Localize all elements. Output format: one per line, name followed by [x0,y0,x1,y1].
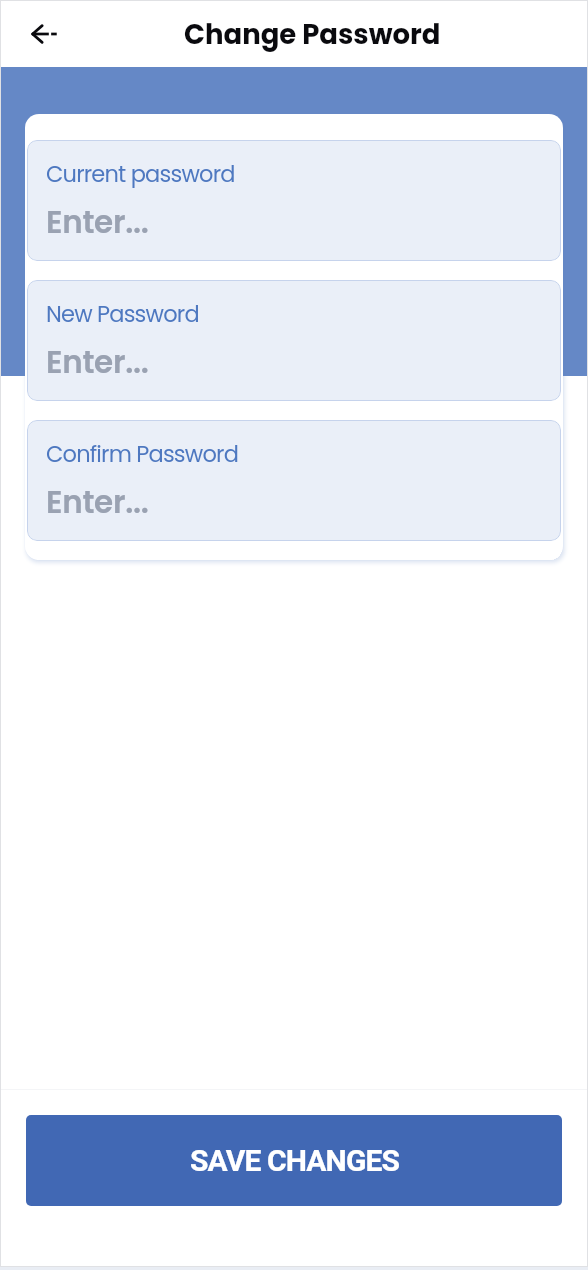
button[interactable]: New Password [27,280,561,401]
button[interactable]: Back [20,10,68,58]
staticText: New Password [46,298,199,329]
staticText: Confirm Password [46,438,239,469]
staticText: Enter... [46,200,149,243]
staticText: Current password [46,158,235,189]
button[interactable]: Confirm Password [27,420,561,541]
button[interactable]: Current password [27,140,561,261]
staticText: Enter... [46,340,149,383]
button[interactable]: SAVE CHANGES [26,1115,562,1206]
staticText: Enter... [46,480,149,523]
staticText: Change Password [184,15,441,53]
staticText: SAVE CHANGES [190,1143,399,1178]
